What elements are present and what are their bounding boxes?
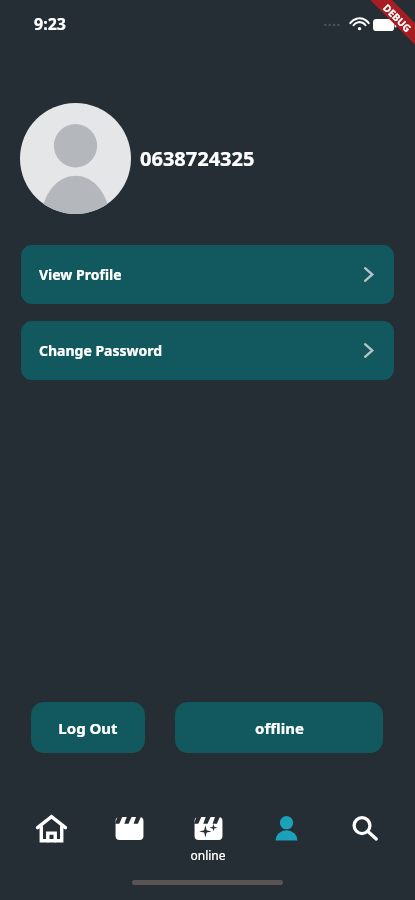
button[interactable]: Search — [325, 800, 403, 870]
staticText: online — [190, 847, 226, 863]
staticText: Log Out — [58, 718, 118, 738]
staticText: Change Password — [39, 341, 163, 360]
button[interactable]: Change Password — [21, 321, 394, 380]
button[interactable]: Online — [169, 800, 247, 870]
staticText: offline — [255, 718, 304, 738]
button[interactable]: offline — [175, 702, 383, 753]
button[interactable]: Log Out — [31, 702, 145, 753]
button[interactable]: Movies — [90, 800, 168, 870]
button[interactable]: View Profile — [21, 245, 394, 304]
staticText: View Profile — [39, 265, 122, 284]
button[interactable]: Profile — [247, 800, 325, 870]
staticText: DEBUG — [380, 1, 415, 35]
button[interactable]: Home — [12, 800, 90, 870]
staticText: 0638724325 — [140, 145, 255, 172]
staticText: 9:23 — [34, 13, 66, 35]
